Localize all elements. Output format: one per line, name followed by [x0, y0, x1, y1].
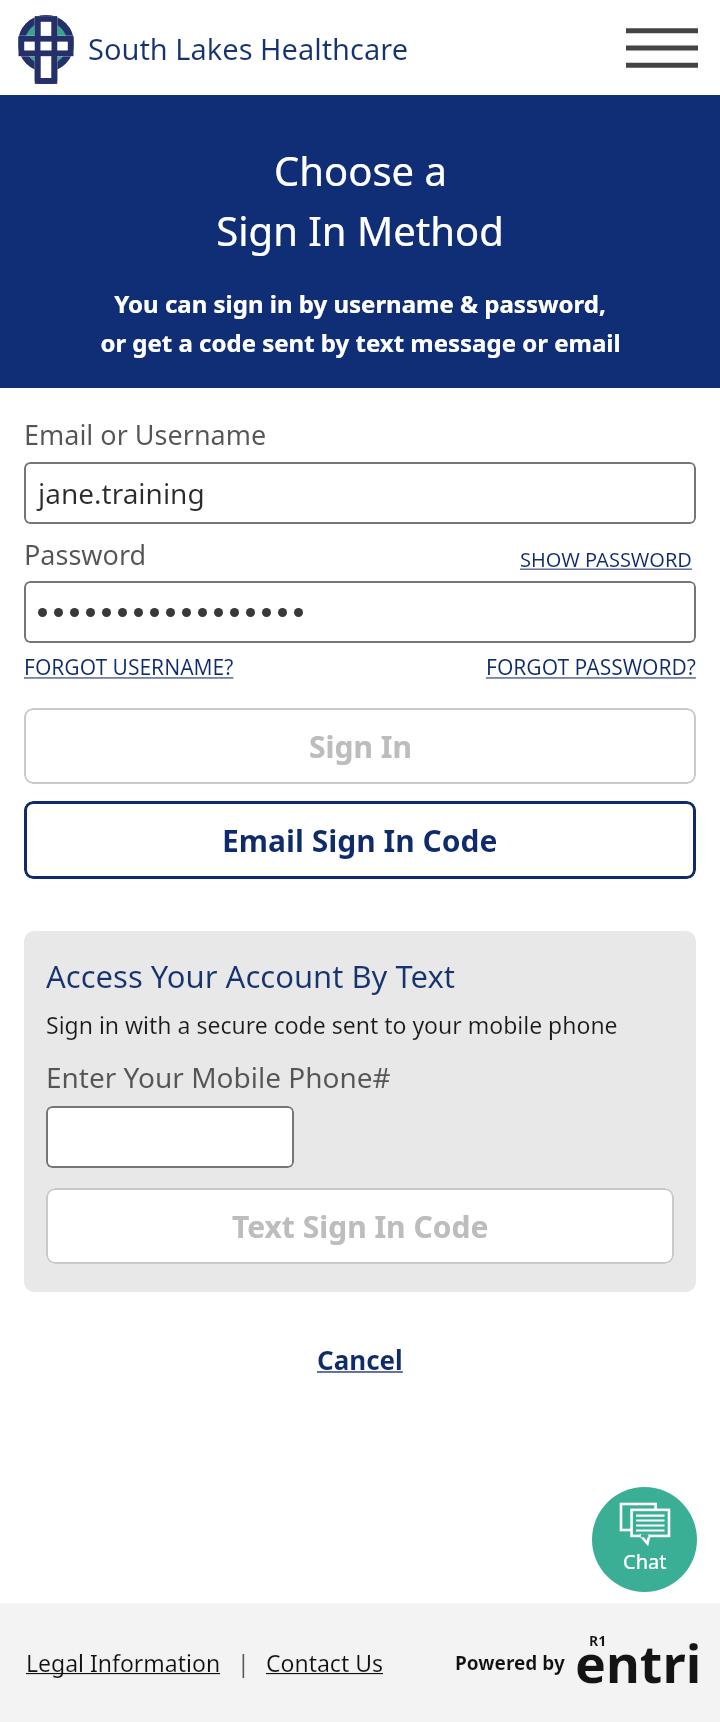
staticText: or get a code sent by text message or em…	[100, 326, 621, 359]
staticText: Enter Your Mobile Phone#	[46, 1058, 391, 1096]
staticText: entri	[575, 1627, 702, 1698]
button[interactable]: Chat	[592, 1487, 697, 1592]
staticText: Cancel	[317, 1342, 403, 1377]
button[interactable]: FORGOT PASSWORD?	[486, 653, 696, 682]
button[interactable]: FORGOT USERNAME?	[24, 653, 234, 682]
staticText: SHOW PASSWORD	[520, 546, 692, 573]
staticText: Sign In	[309, 726, 412, 767]
button[interactable]: South Lakes Healthcare	[18, 15, 408, 81]
staticText: Sign In Method	[216, 203, 504, 257]
staticText: Email or Username	[24, 416, 267, 453]
staticText: Text Sign In Code	[232, 1206, 489, 1247]
button[interactable]: Sign In	[24, 708, 696, 784]
staticText: Access Your Account By Text	[46, 955, 456, 997]
button[interactable]: jane.training	[24, 462, 696, 524]
button[interactable]: Cancel	[317, 1342, 403, 1377]
staticText: Sign in with a secure code sent to your …	[46, 1009, 618, 1040]
button[interactable]: SHOW PASSWORD	[520, 546, 692, 573]
staticText: FORGOT PASSWORD?	[486, 653, 696, 682]
staticText: FORGOT USERNAME?	[24, 653, 234, 682]
button[interactable]: Text Sign In Code	[46, 1188, 674, 1264]
staticText: Legal Information	[26, 1647, 221, 1678]
button[interactable]: Email Sign In Code	[24, 801, 696, 879]
staticText: Email Sign In Code	[222, 820, 498, 861]
button[interactable]	[24, 581, 696, 643]
button[interactable]: Menu	[626, 12, 698, 84]
staticText: You can sign in by username & password,	[114, 287, 606, 320]
staticText: Choose a	[274, 143, 447, 197]
button[interactable]: Legal Information	[26, 1647, 221, 1678]
staticText: South Lakes Healthcare	[88, 29, 408, 68]
staticText: Password	[24, 536, 147, 573]
staticText: Powered by	[455, 1650, 565, 1676]
staticText: |	[237, 1647, 250, 1678]
staticText: R1	[589, 1631, 607, 1650]
staticText: jane.training	[38, 474, 205, 512]
button[interactable]	[46, 1106, 294, 1168]
staticText: Chat	[623, 1548, 667, 1575]
button[interactable]: Contact Us	[266, 1647, 384, 1678]
staticText: Contact Us	[266, 1647, 384, 1678]
